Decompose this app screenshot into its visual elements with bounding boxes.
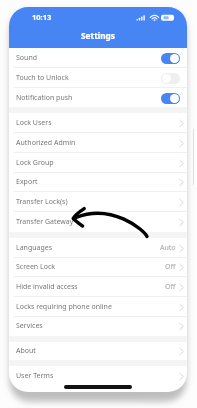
button[interactable]: Toggle	[161, 73, 180, 84]
button[interactable]: Sound	[9, 48, 187, 68]
button[interactable]: Touch to Unlock	[9, 68, 187, 88]
button[interactable]: Toggle	[161, 53, 180, 64]
staticText: Languages	[16, 243, 53, 253]
button[interactable]: Hide invalid access	[9, 277, 187, 297]
button[interactable]: Export	[9, 172, 187, 192]
staticText: Hide invalid access	[16, 282, 78, 292]
staticText: Screen Lock	[16, 262, 55, 272]
staticText: Off	[165, 262, 176, 272]
button[interactable]: Locks requiring phone online	[9, 297, 187, 317]
staticText: Locks requiring phone online	[16, 302, 112, 312]
button[interactable]: Lock Group	[9, 153, 187, 173]
staticText: Authorized Admin	[16, 138, 76, 148]
staticText: About	[16, 346, 36, 356]
staticText: Off	[165, 282, 176, 292]
button[interactable]: Authorized Admin	[9, 133, 187, 153]
button[interactable]: Languages	[9, 238, 187, 258]
staticText: Touch to Unlock	[16, 73, 69, 83]
staticText: Transfer Gateway	[16, 217, 74, 227]
button[interactable]: Notification push	[9, 88, 187, 108]
button[interactable]: User Terms	[9, 366, 187, 386]
staticText: Export	[16, 177, 38, 187]
staticText: Auto	[160, 243, 176, 253]
button[interactable]: Toggle	[161, 93, 180, 104]
button[interactable]: Transfer Gateway	[9, 212, 187, 232]
button[interactable]: Transfer Lock(s)	[9, 192, 187, 212]
button[interactable]: Lock Users	[9, 113, 187, 133]
staticText: Services	[16, 321, 43, 331]
staticText: Sound	[16, 53, 38, 63]
button[interactable]: About	[9, 342, 187, 360]
staticText: Notification push	[16, 93, 73, 103]
button[interactable]: Services	[9, 316, 187, 336]
staticText: Lock Users	[16, 118, 52, 128]
staticText: Settings	[81, 30, 116, 41]
staticText: Lock Group	[16, 158, 54, 168]
staticText: Transfer Lock(s)	[16, 197, 68, 207]
staticText: 10:13	[32, 12, 52, 22]
button[interactable]: Screen Lock	[9, 257, 187, 277]
staticText: User Terms	[16, 371, 54, 381]
